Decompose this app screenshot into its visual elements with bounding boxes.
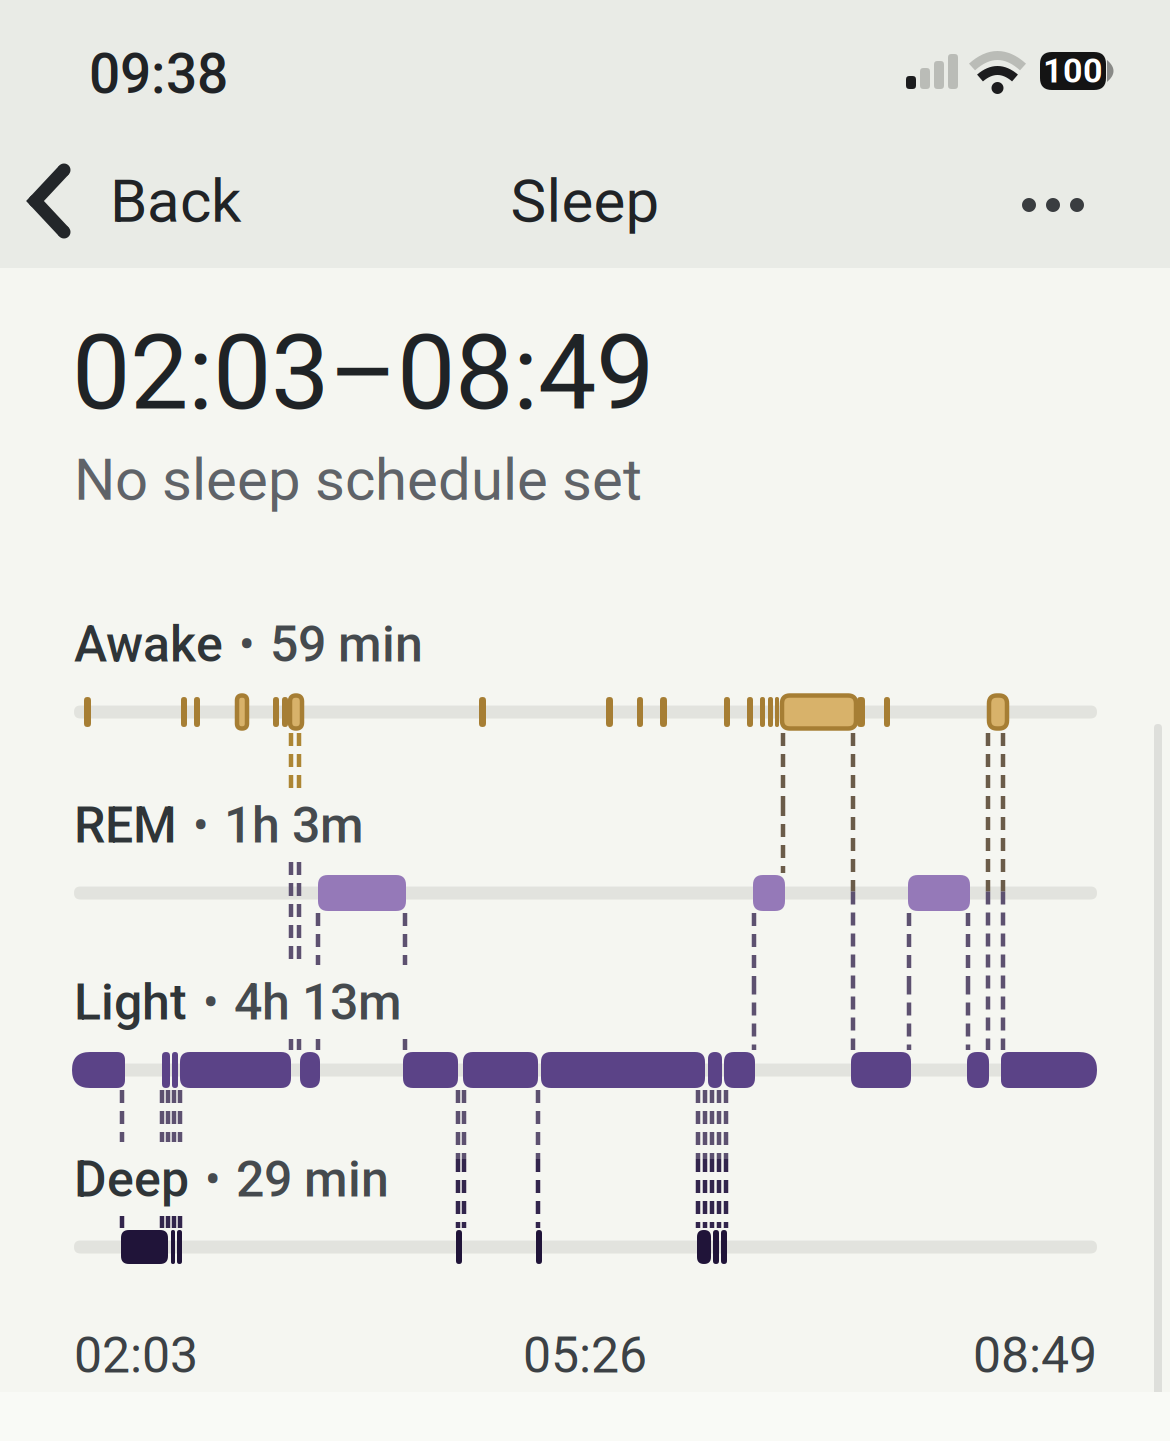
staticText: 29 min — [236, 1150, 389, 1209]
staticText: 02:03 — [74, 1326, 198, 1385]
staticText: • — [205, 1153, 220, 1205]
staticText: Awake — [74, 615, 223, 674]
staticText: Sleep — [510, 166, 659, 236]
staticText: 59 min — [270, 615, 423, 674]
staticText: 1h 3m — [224, 796, 364, 855]
staticText: • — [203, 976, 218, 1028]
staticText: Back — [110, 166, 241, 236]
staticText: Deep — [74, 1150, 189, 1209]
staticText: Light — [74, 973, 187, 1032]
staticText: 05:26 — [523, 1326, 647, 1385]
staticText: REM — [74, 796, 177, 855]
staticText: 02:03–08:49 — [72, 312, 654, 434]
staticText: No sleep schedule set — [74, 446, 642, 514]
staticText: 08:49 — [973, 1326, 1097, 1385]
staticText: 100 — [1043, 51, 1103, 91]
staticText: • — [193, 799, 208, 851]
staticText: 09:38 — [89, 42, 228, 106]
staticText: • — [239, 618, 254, 670]
staticText: 4h 13m — [234, 973, 402, 1032]
